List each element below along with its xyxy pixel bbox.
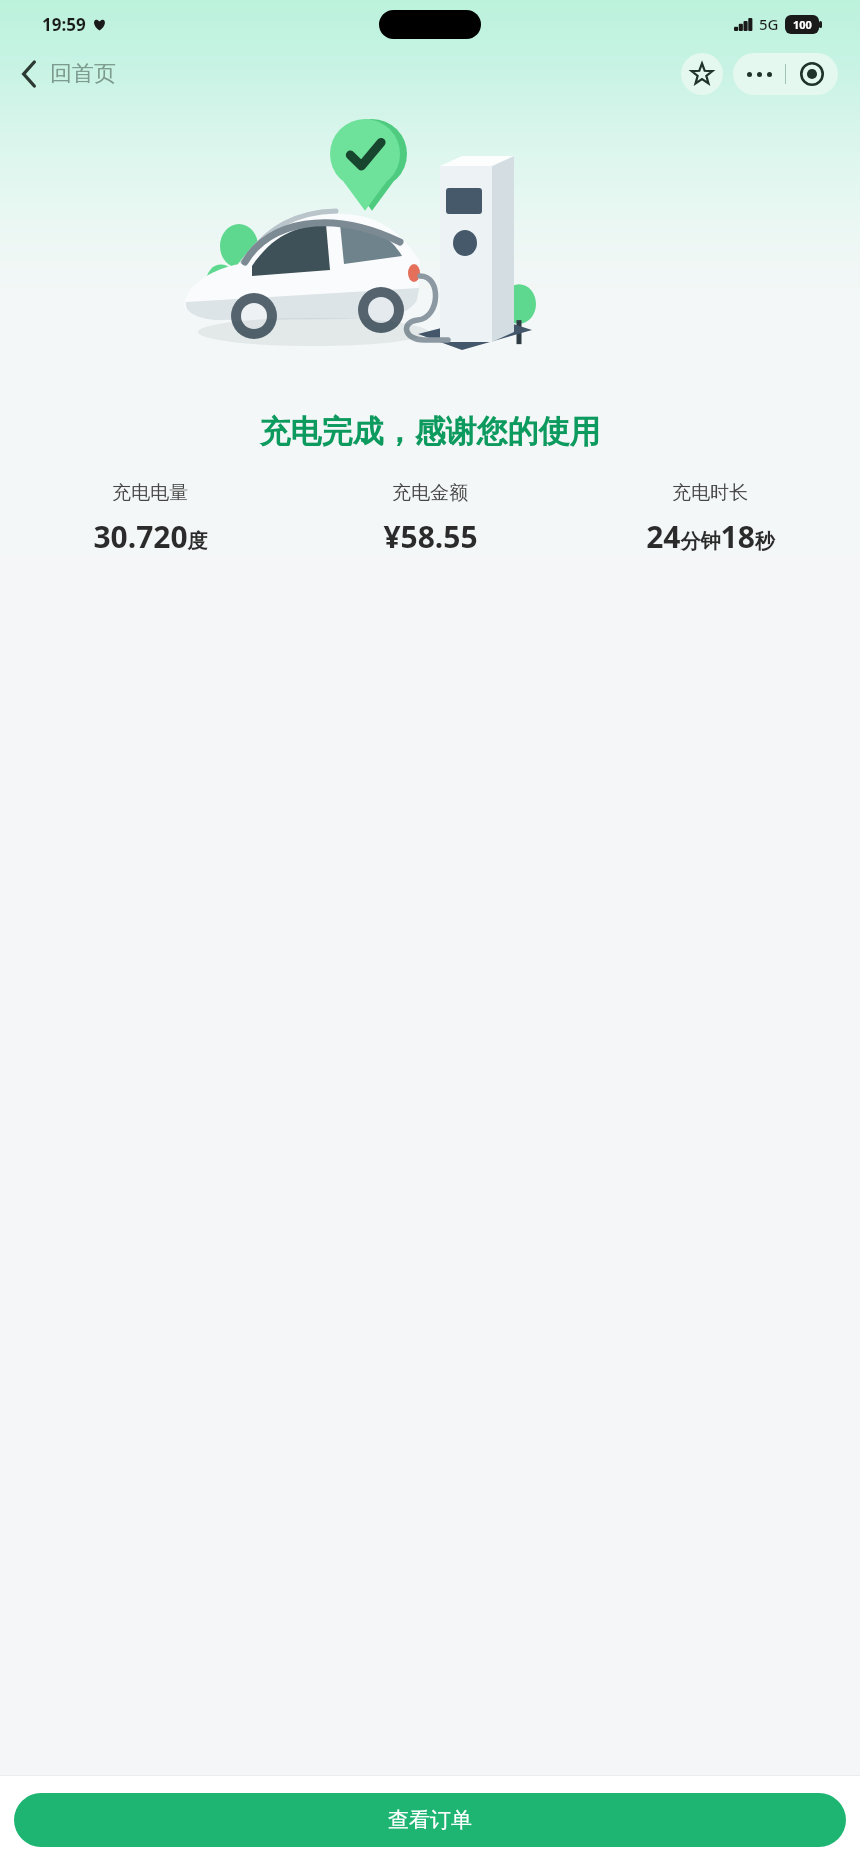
- button[interactable]: 回首页: [14, 54, 124, 94]
- staticText: 30.720度: [93, 516, 208, 557]
- staticText: 24分钟18秒: [646, 516, 775, 557]
- button[interactable]: 更多: [733, 53, 785, 95]
- staticText: 充电时长: [672, 481, 748, 505]
- staticText: 充电金额: [392, 481, 468, 505]
- button[interactable]: 查看订单: [14, 1793, 846, 1847]
- staticText: 5G: [759, 14, 779, 34]
- staticText: 查看订单: [388, 1807, 472, 1833]
- staticText: 回首页: [50, 60, 116, 88]
- button[interactable]: 关闭: [786, 53, 838, 95]
- staticText: 充电完成，感谢您的使用: [0, 412, 860, 451]
- staticText: 100: [793, 17, 812, 32]
- staticText: 19:59: [42, 13, 86, 36]
- button[interactable]: 收藏: [681, 53, 723, 95]
- staticText: 充电电量: [112, 481, 188, 505]
- staticText: ¥58.55: [383, 516, 478, 557]
